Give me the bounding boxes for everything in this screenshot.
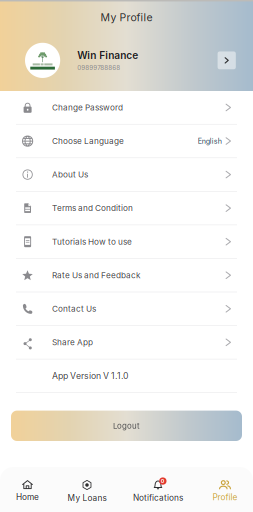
staticText: Rate Us and Feedback (52, 270, 141, 280)
button[interactable]: Share App (0, 326, 253, 359)
button[interactable]: Rate Us and Feedback (0, 259, 253, 292)
staticText: My Profile (100, 11, 152, 24)
staticText: Contact Us (52, 304, 96, 314)
button[interactable]: Logout (11, 411, 242, 441)
staticText: Share App (52, 337, 93, 347)
staticText: Terms and Condition (52, 203, 133, 213)
button[interactable]: Tutorials How to use (0, 225, 253, 259)
staticText: 09899788868 (77, 64, 120, 72)
staticText: Win Finance (77, 49, 138, 61)
button[interactable]: Terms and Condition (0, 192, 253, 225)
staticText: Profile (212, 492, 237, 502)
staticText: 0 (161, 478, 165, 484)
button[interactable]: 0 (119, 467, 197, 512)
button[interactable]: Choose Language (0, 124, 253, 158)
staticText: Notifications (133, 493, 183, 503)
button[interactable]: Edit profile (218, 51, 236, 69)
button[interactable]: Home (0, 467, 55, 512)
staticText: Home (16, 492, 39, 502)
staticText: App Version V 1.1.0 (52, 371, 128, 381)
staticText: Choose Language (52, 136, 124, 146)
button[interactable]: About Us (0, 158, 253, 192)
staticText: My Loans (67, 493, 106, 503)
button[interactable]: Profile (197, 467, 253, 512)
staticText: Tutorials How to use (52, 237, 132, 247)
button[interactable]: Change Password (0, 91, 253, 124)
button[interactable]: Contact Us (0, 292, 253, 326)
staticText: English (198, 137, 222, 145)
staticText: Change Password (52, 102, 123, 112)
staticText: About Us (52, 170, 88, 179)
button[interactable]: My Loans (55, 467, 119, 512)
staticText: Logout (113, 421, 140, 430)
